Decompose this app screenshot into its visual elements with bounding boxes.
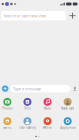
staticText: Name card <box>61 107 74 110</box>
button[interactable]: Search or start new chat <box>1 11 66 20</box>
staticText: Type a message <box>13 86 41 91</box>
staticText: Files <box>24 107 30 110</box>
staticText: Photos <box>2 107 12 110</box>
button[interactable]: Music <box>37 94 58 114</box>
button[interactable]: New chat <box>66 10 79 21</box>
staticText: Where <box>43 126 52 129</box>
staticText: Search or start new chat <box>3 13 45 18</box>
button[interactable]: Where <box>37 114 58 133</box>
staticText: Apply now <box>60 126 75 129</box>
button[interactable]: Photos <box>0 94 17 114</box>
button[interactable]: User Gallery <box>17 114 37 133</box>
button[interactable]: Name card <box>58 94 78 114</box>
button[interactable]: Attach <box>1 84 9 93</box>
button[interactable]: Events <box>0 114 17 133</box>
button[interactable]: Type a message <box>10 85 70 92</box>
button[interactable]: Record voice message <box>72 84 78 93</box>
staticText: Events <box>3 126 11 129</box>
button[interactable]: Files <box>17 94 37 114</box>
staticText: User Gallery <box>19 126 35 129</box>
staticText: Music <box>44 107 51 110</box>
button[interactable]: Apply now <box>58 114 78 133</box>
